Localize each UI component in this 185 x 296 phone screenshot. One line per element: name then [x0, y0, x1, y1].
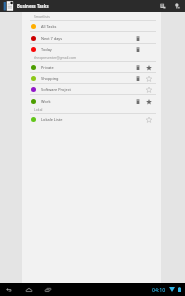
- staticText: Today: [41, 47, 52, 52]
- button[interactable]: Delete list: [133, 62, 142, 73]
- button[interactable]: Back: [4, 283, 13, 296]
- staticText: Business Tasks: [17, 3, 49, 9]
- staticText: Software Project: [41, 87, 71, 92]
- button[interactable]: Delete list: [133, 96, 142, 107]
- staticText: 04:10: [152, 286, 166, 293]
- staticText: Next 7 days: [41, 36, 63, 41]
- staticText: Lokale Liste: [41, 117, 63, 122]
- staticText: Smartlists: [34, 14, 50, 19]
- button[interactable]: Today: [22, 44, 161, 55]
- staticText: thexpresenter@gmail.com: [34, 55, 77, 60]
- button[interactable]: Favourite: [144, 62, 153, 73]
- button[interactable]: Home: [24, 283, 33, 296]
- staticText: All Tasks: [41, 24, 57, 29]
- button[interactable]: Favourite: [144, 73, 153, 84]
- button[interactable]: Work: [22, 96, 161, 107]
- button[interactable]: Delete list: [133, 21, 142, 32]
- button[interactable]: Software Project: [22, 84, 161, 95]
- button[interactable]: Favourite: [144, 96, 153, 107]
- button[interactable]: Favourite: [144, 114, 153, 125]
- button[interactable]: Favourite: [144, 84, 153, 95]
- button[interactable]: Delete list: [133, 44, 142, 55]
- button[interactable]: Delete list: [133, 33, 142, 44]
- staticText: Work: [41, 99, 51, 104]
- button[interactable]: Delete list: [133, 84, 142, 95]
- button[interactable]: Shopping: [22, 73, 161, 84]
- button[interactable]: Favourite: [144, 21, 153, 32]
- button[interactable]: Favourite: [144, 33, 153, 44]
- button[interactable]: Recent apps: [43, 283, 52, 296]
- button[interactable]: Lokale Liste: [22, 114, 161, 125]
- staticText: Lokal: [34, 107, 43, 112]
- button[interactable]: Private: [22, 62, 161, 73]
- button[interactable]: All Tasks: [22, 21, 161, 32]
- button[interactable]: New list: [157, 0, 168, 12]
- staticText: Private: [41, 65, 54, 70]
- button[interactable]: Delete list: [133, 73, 142, 84]
- button[interactable]: New task: [171, 0, 182, 12]
- staticText: Shopping: [41, 76, 59, 81]
- button[interactable]: Next 7 days: [22, 33, 161, 44]
